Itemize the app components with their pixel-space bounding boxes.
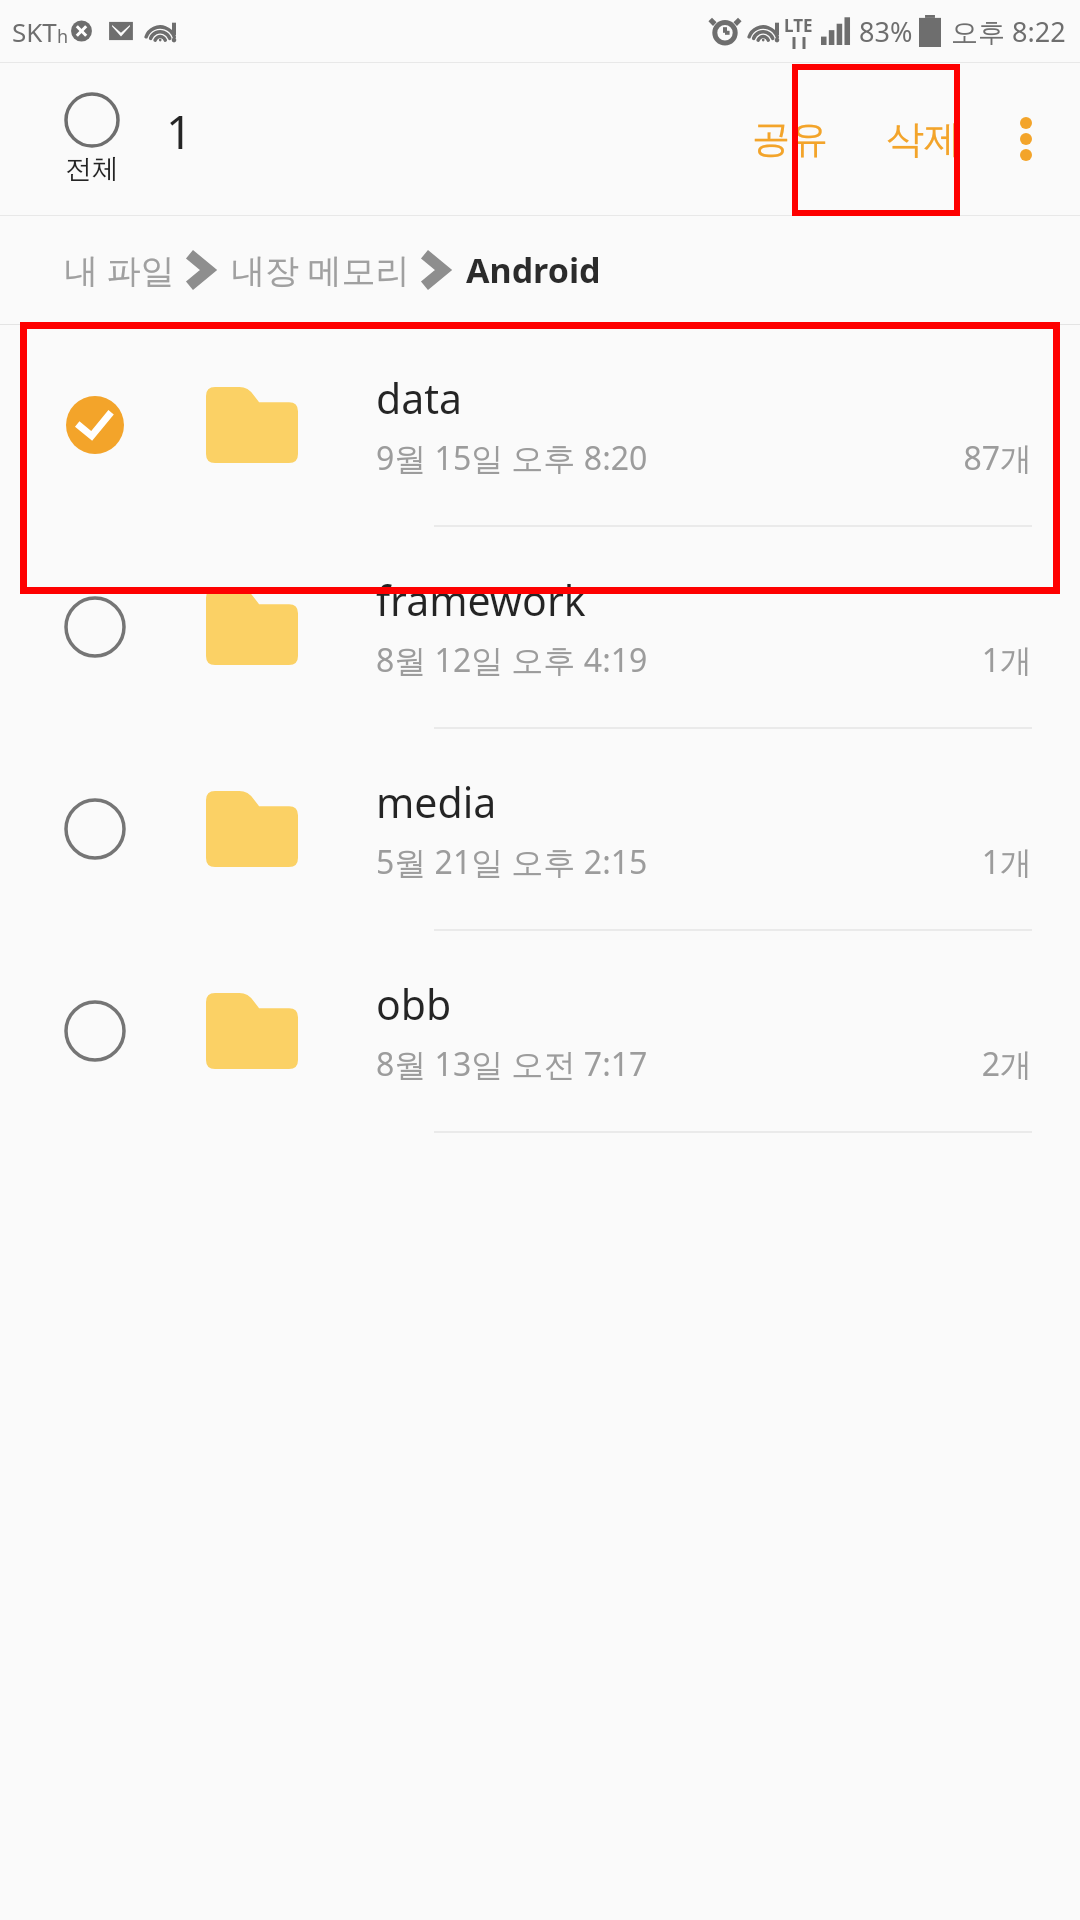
staticText: 오후 8:22 (951, 13, 1066, 50)
staticText: 삭제 (886, 115, 962, 163)
button[interactable]: More options (994, 107, 1058, 171)
button[interactable]: Select (64, 596, 126, 658)
staticText: 9월 15일 오후 8:20 (376, 436, 648, 480)
staticText: LTE (784, 14, 813, 37)
button[interactable]: Selected (0, 325, 1080, 527)
button[interactable]: Android (466, 239, 601, 301)
staticText: 87개 (963, 436, 1032, 480)
staticText: 전체 (65, 152, 119, 186)
staticText: 내장 메모리 (231, 247, 410, 293)
staticText: obb (376, 976, 452, 1032)
staticText: media (376, 774, 497, 830)
staticText: 83% (859, 13, 913, 50)
button[interactable]: 전체 (58, 88, 126, 190)
staticText: framework (376, 572, 586, 628)
staticText: 공유 (752, 115, 828, 163)
button[interactable]: 내 파일 (64, 239, 175, 301)
staticText: 2개 (981, 1042, 1032, 1086)
staticText: SKT (12, 14, 57, 49)
button[interactable]: Select (0, 527, 1080, 729)
staticText: 1개 (981, 638, 1032, 682)
staticText: 1 (166, 100, 193, 163)
staticText: 내 파일 (64, 247, 175, 293)
staticText: 1개 (981, 840, 1032, 884)
staticText: data (376, 370, 463, 426)
staticText: 8월 13일 오전 7:17 (376, 1042, 648, 1086)
button[interactable]: 내장 메모리 (231, 239, 410, 301)
staticText: h (57, 24, 69, 49)
staticText: 5월 21일 오후 2:15 (376, 840, 648, 884)
button[interactable]: 삭제 (864, 99, 984, 179)
staticText: Android (466, 247, 601, 293)
button[interactable]: Select (64, 1000, 126, 1062)
button[interactable]: Selected (64, 394, 126, 456)
staticText: 8월 12일 오후 4:19 (376, 638, 648, 682)
button[interactable]: Select (0, 729, 1080, 931)
button[interactable]: Select (0, 931, 1080, 1133)
button[interactable]: 공유 (730, 99, 850, 179)
button[interactable]: Select (64, 798, 126, 860)
